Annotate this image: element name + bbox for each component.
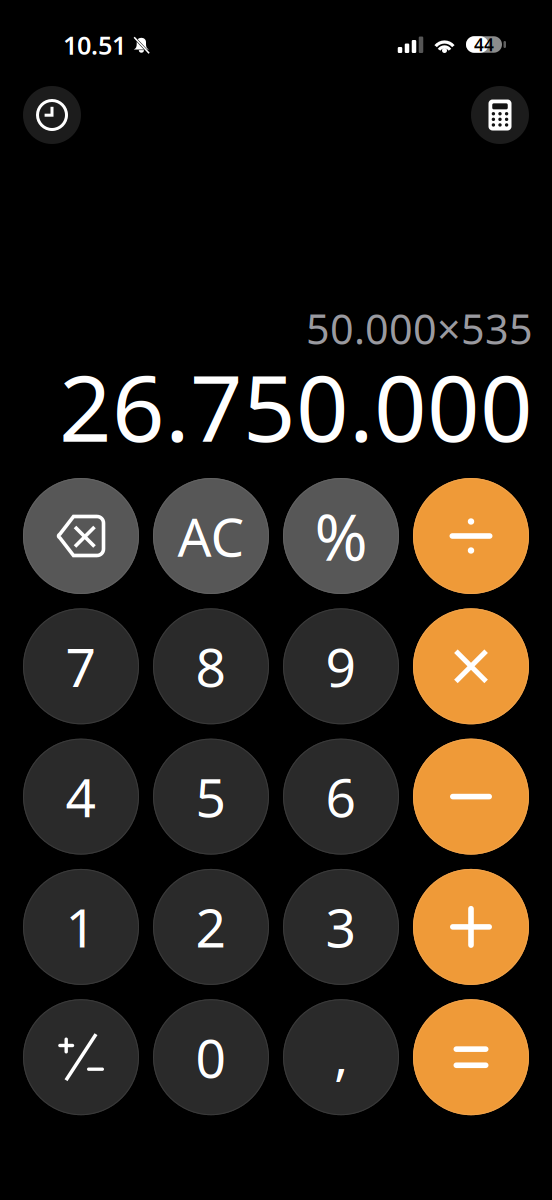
button[interactable]: Equals bbox=[413, 999, 529, 1115]
staticText: 5 bbox=[195, 761, 226, 832]
button[interactable]: Divide bbox=[413, 478, 529, 594]
button[interactable]: Plus minus bbox=[23, 999, 139, 1115]
staticText: 44 bbox=[474, 33, 494, 56]
staticText: 26.750.000 bbox=[59, 345, 533, 467]
button[interactable]: Decimal comma bbox=[283, 999, 399, 1115]
staticText: , bbox=[334, 1019, 348, 1090]
staticText: AC bbox=[177, 501, 244, 571]
staticText: 10.51 bbox=[63, 28, 126, 62]
button[interactable]: Multiply bbox=[413, 608, 529, 724]
button[interactable]: 0 bbox=[153, 999, 269, 1115]
button[interactable]: 3 bbox=[283, 869, 399, 985]
button[interactable]: 8 bbox=[153, 608, 269, 724]
staticText: 50.000×535 bbox=[306, 301, 533, 356]
button[interactable]: 5 bbox=[153, 739, 269, 855]
staticText: 1 bbox=[65, 891, 96, 962]
button[interactable]: Minus bbox=[413, 739, 529, 855]
button[interactable]: Percent bbox=[283, 478, 399, 594]
staticText: 2 bbox=[195, 891, 226, 962]
button[interactable]: 9 bbox=[283, 608, 399, 724]
staticText: 3 bbox=[325, 891, 356, 962]
staticText: 0 bbox=[195, 1022, 226, 1093]
button[interactable]: Plus bbox=[413, 869, 529, 985]
staticText: % bbox=[314, 493, 367, 578]
button[interactable]: Calculator mode bbox=[471, 86, 529, 144]
button[interactable]: 1 bbox=[23, 869, 139, 985]
button[interactable]: History bbox=[23, 86, 81, 144]
staticText: 9 bbox=[325, 631, 356, 702]
staticText: 8 bbox=[195, 631, 226, 702]
button[interactable]: All clear bbox=[153, 478, 269, 594]
button[interactable]: 6 bbox=[283, 739, 399, 855]
staticText: 6 bbox=[325, 761, 356, 832]
button[interactable]: Delete bbox=[23, 478, 139, 594]
staticText: 7 bbox=[65, 631, 96, 702]
button[interactable]: 2 bbox=[153, 869, 269, 985]
staticText: 4 bbox=[65, 761, 96, 832]
button[interactable]: 7 bbox=[23, 608, 139, 724]
button[interactable]: 4 bbox=[23, 739, 139, 855]
